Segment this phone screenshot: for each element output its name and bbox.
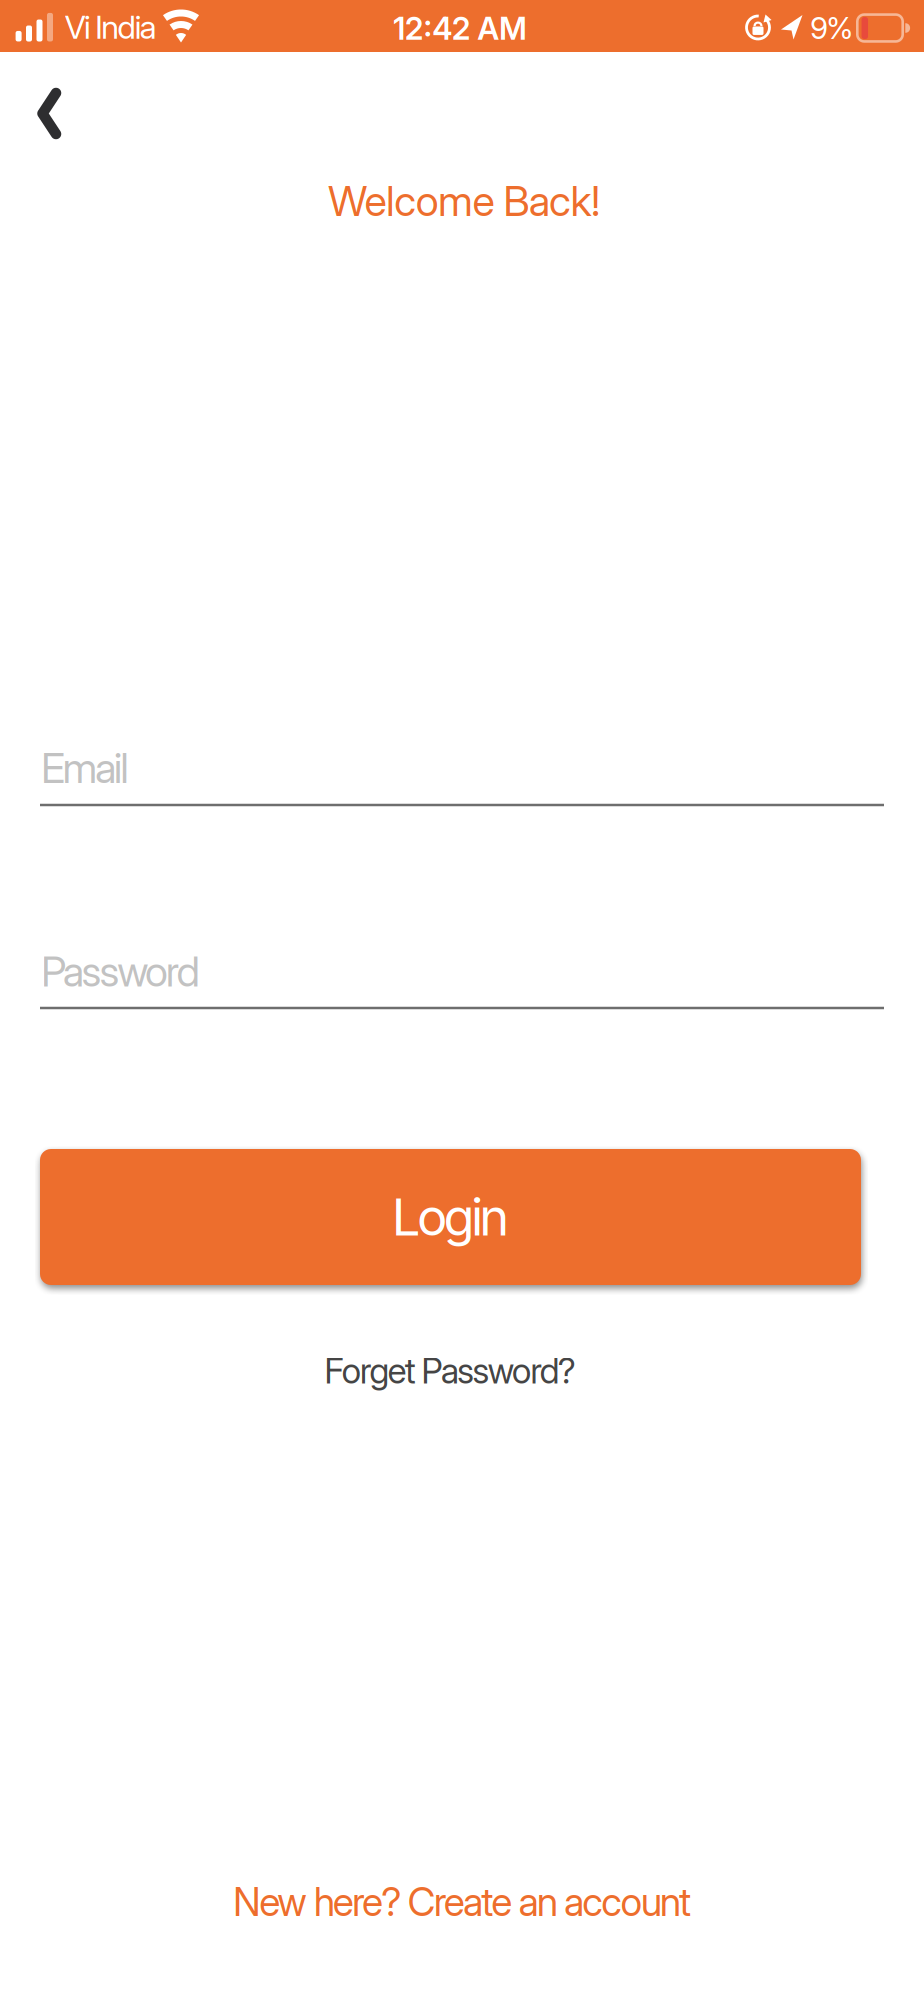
- staticText: Email: [41, 743, 129, 793]
- staticText: New here? Create an account: [233, 1879, 691, 1925]
- staticText: Password: [41, 946, 200, 996]
- button[interactable]: Email: [40, 737, 884, 807]
- button[interactable]: [18, 69, 82, 158]
- button[interactable]: New here? Create an account: [223, 1869, 701, 1935]
- staticText: Welcome Back!: [328, 176, 600, 226]
- button[interactable]: Password: [40, 940, 884, 1010]
- button[interactable]: Login: [40, 1149, 861, 1285]
- staticText: Login: [392, 1186, 509, 1248]
- staticText: 9%: [810, 10, 853, 46]
- staticText: 12:42 AM: [393, 10, 527, 47]
- staticText: Forget Password?: [324, 1350, 576, 1392]
- button[interactable]: Forget Password?: [314, 1340, 586, 1402]
- staticText: Vi India: [64, 8, 157, 46]
